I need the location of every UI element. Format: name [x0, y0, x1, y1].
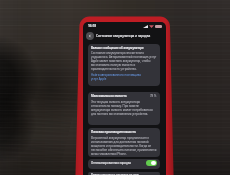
staticText: 16:18	[88, 24, 97, 28]
staticText: Максимальная емкость	[91, 94, 127, 98]
staticText: 78 %	[150, 94, 157, 98]
staticText: Состояние аккумулятора значительно ухудш…	[91, 51, 157, 71]
button[interactable]: Back	[86, 32, 94, 40]
staticText: Режим зарядки и нагрузка на сеть	[91, 173, 140, 175]
staticText: Состояние аккумулятора и зарядка	[96, 34, 151, 38]
staticText: Важное сообщение об аккумуляторе	[91, 46, 144, 50]
button[interactable]: Optimised charging toggle	[146, 160, 157, 166]
staticText: Оптимизированная зарядка	[91, 161, 131, 165]
staticText: Встроенный аккумулятор предназначен к ис…	[91, 136, 157, 155]
button[interactable]: Оптимизированная зарядка	[88, 159, 160, 169]
staticText: Найти авторизованного поставщика услуг A…	[91, 73, 143, 81]
button[interactable]: Максимальная емкость	[88, 92, 160, 125]
button[interactable]: Важное сообщение об аккумуляторе	[88, 44, 160, 86]
button[interactable]: Режим зарядки и нагрузка на сеть	[88, 172, 160, 175]
button[interactable]: Пиковая производительность	[88, 128, 160, 157]
staticText: Пиковая производительность	[91, 130, 136, 134]
staticText: Это текущая емкость аккумулятора относит…	[91, 100, 157, 116]
